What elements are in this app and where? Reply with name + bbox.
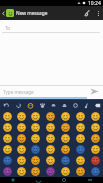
button[interactable]: Emoji — [0, 166, 14, 177]
button[interactable]: Emoji — [28, 144, 43, 155]
button[interactable]: Type message — [0, 86, 87, 97]
button[interactable]: Emoji — [14, 166, 28, 177]
button[interactable]: Objects — [81, 99, 92, 111]
button[interactable]: Recents — [77, 177, 103, 183]
button[interactable]: Animals — [36, 99, 48, 111]
staticText: 10:24 — [88, 0, 101, 6]
button[interactable]: Recently used — [12, 99, 24, 111]
button[interactable]: Emoji — [88, 144, 103, 155]
button[interactable]: Emoji — [28, 111, 43, 122]
button[interactable]: Smileys — [24, 99, 36, 111]
button[interactable]: Backspace — [92, 99, 103, 111]
button[interactable]: Emoji — [43, 166, 58, 177]
button[interactable]: Emoji — [28, 133, 43, 144]
button[interactable]: Emoji — [88, 155, 103, 166]
button[interactable]: More options — [94, 6, 103, 20]
button[interactable]: Emoji — [58, 111, 73, 122]
button[interactable]: Home — [51, 177, 77, 183]
button[interactable]: Activity — [70, 99, 81, 111]
button[interactable]: Emoji — [0, 111, 14, 122]
button[interactable]: Emoji — [73, 122, 88, 133]
button[interactable]: Emoji — [88, 166, 103, 177]
button[interactable]: Emoji — [58, 122, 73, 133]
button[interactable]: Emoji — [14, 155, 28, 166]
button[interactable]: Emoji — [73, 144, 88, 155]
button[interactable]: Emoji — [14, 144, 28, 155]
button[interactable]: Back — [25, 177, 51, 183]
button[interactable]: Emoji — [58, 133, 73, 144]
button[interactable]: Emoji — [28, 166, 43, 177]
button[interactable]: Emoji — [88, 122, 103, 133]
button[interactable]: Emoji — [58, 166, 73, 177]
button[interactable]: Emoji — [28, 155, 43, 166]
button[interactable]: Travel — [59, 99, 70, 111]
button[interactable]: Emoji — [0, 144, 14, 155]
button[interactable]: Menu — [0, 177, 25, 183]
button[interactable]: Food — [48, 99, 59, 111]
button[interactable]: Send — [86, 86, 103, 97]
button[interactable]: Emoji — [58, 144, 73, 155]
button[interactable]: Emoji — [88, 133, 103, 144]
button[interactable]: Emoji — [88, 111, 103, 122]
staticText: To — [5, 25, 11, 31]
button[interactable]: Emoji — [14, 133, 28, 144]
button[interactable]: Emoji — [43, 133, 58, 144]
button[interactable]: Emoji — [0, 122, 14, 133]
button[interactable]: Emoji — [43, 144, 58, 155]
button[interactable]: Navigate up — [0, 6, 6, 20]
button[interactable]: Undo — [0, 99, 12, 111]
button[interactable]: Emoji — [0, 155, 14, 166]
button[interactable]: Emoji — [43, 111, 58, 122]
button[interactable]: Emoji — [14, 122, 28, 133]
button[interactable]: To — [0, 22, 103, 33]
button[interactable]: Emoji — [28, 122, 43, 133]
button[interactable]: Emoji — [73, 133, 88, 144]
button[interactable]: Emoji — [43, 155, 58, 166]
button[interactable]: Emoji — [43, 122, 58, 133]
staticText: Type message — [3, 89, 34, 95]
staticText: New message — [16, 10, 48, 17]
button[interactable]: Emoji — [73, 111, 88, 122]
button[interactable]: Emoji — [14, 111, 28, 122]
button[interactable]: Attach — [80, 6, 94, 20]
button[interactable]: Emoji — [0, 133, 14, 144]
button[interactable]: Emoji — [73, 166, 88, 177]
button[interactable]: Emoji — [73, 155, 88, 166]
button[interactable]: Emoji — [58, 155, 73, 166]
